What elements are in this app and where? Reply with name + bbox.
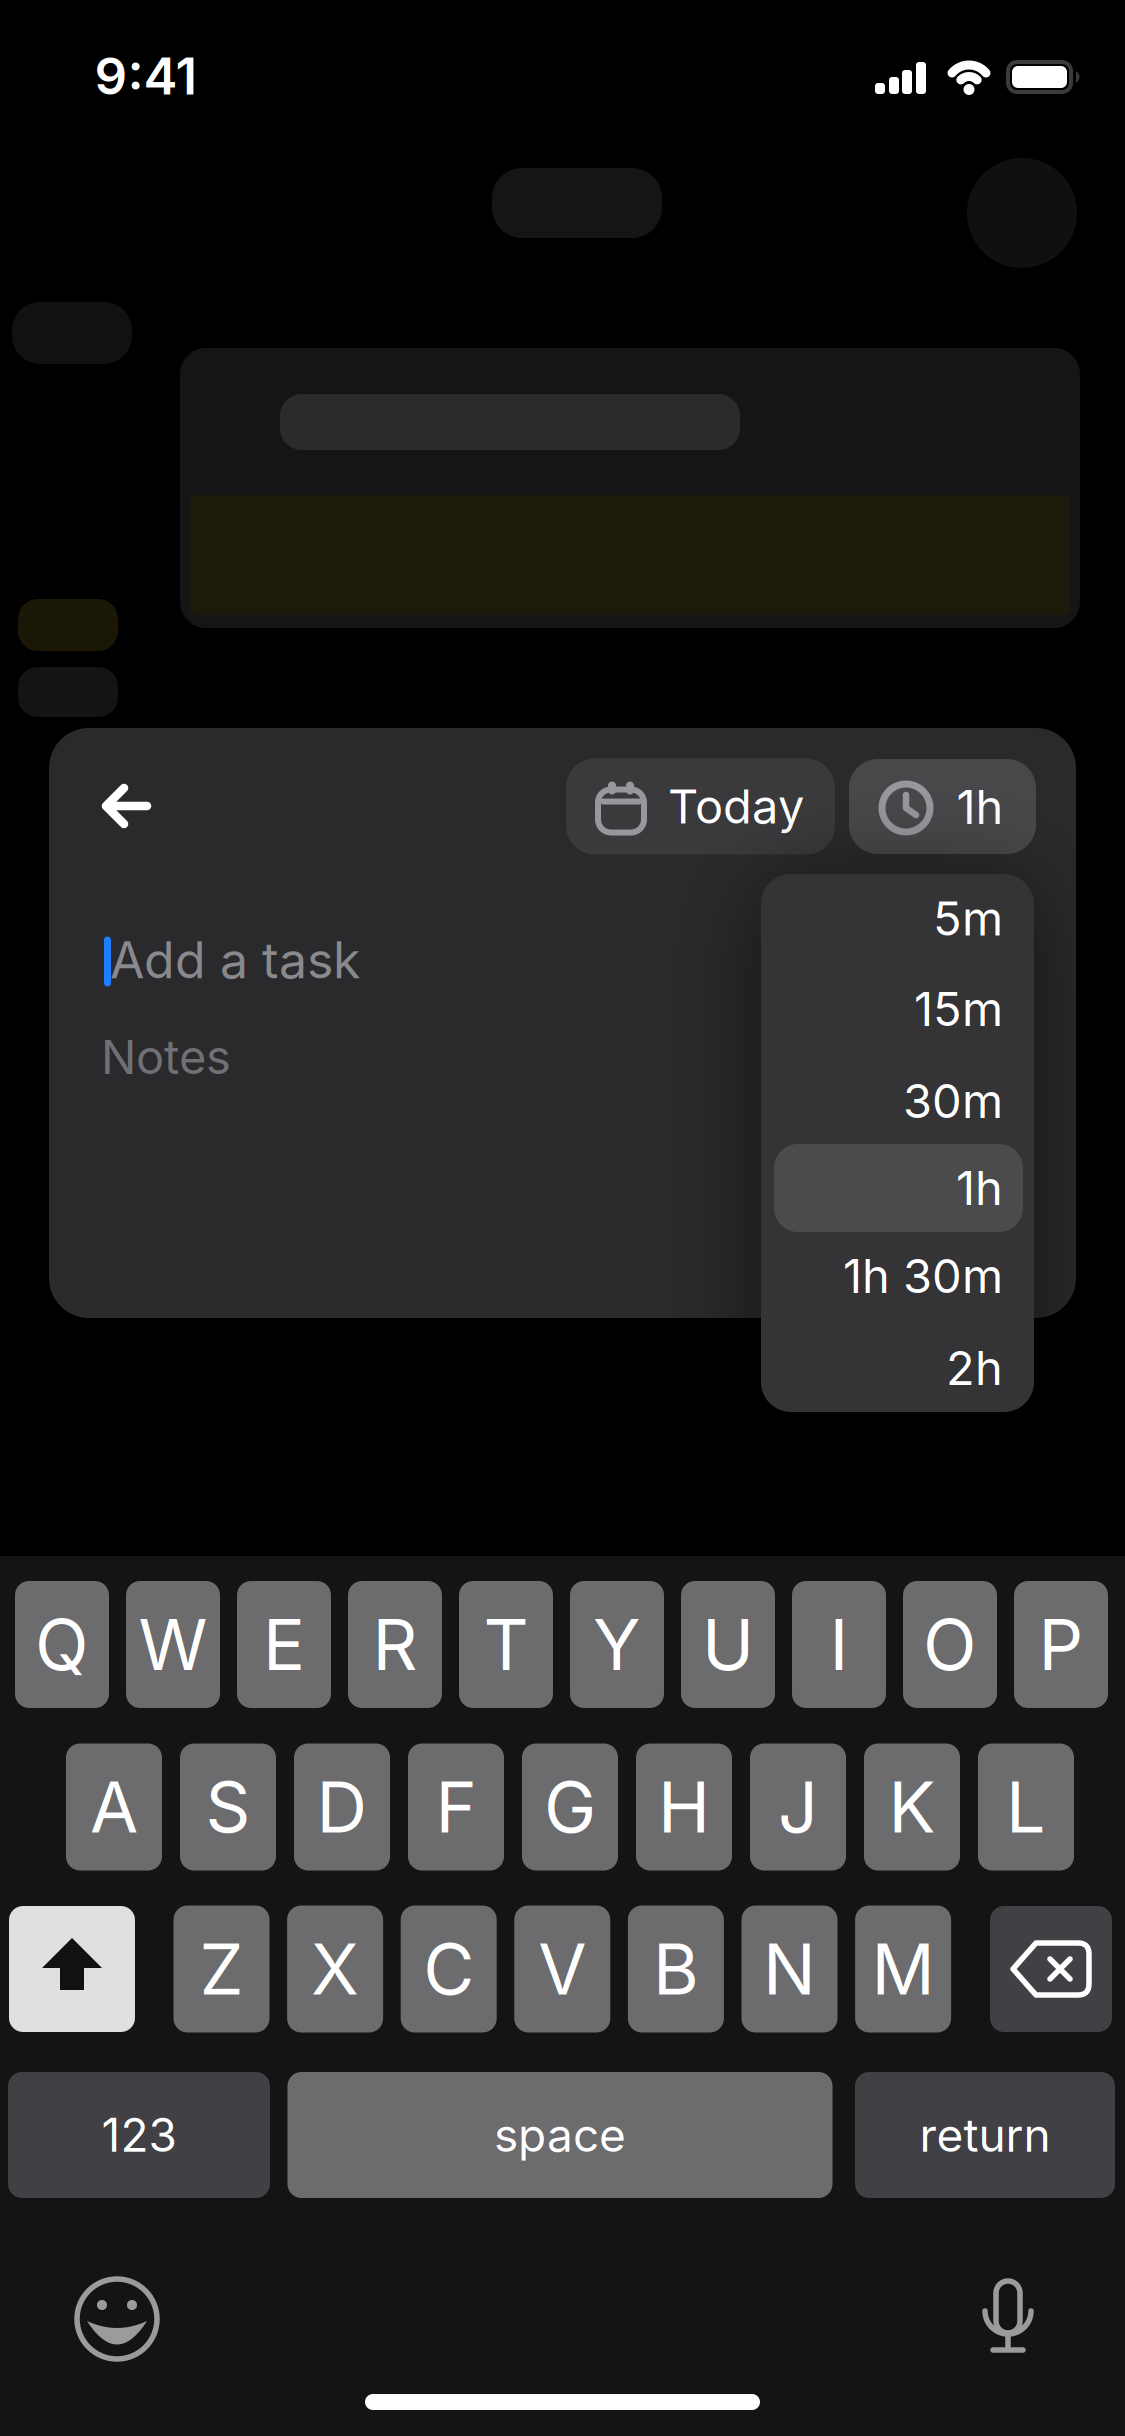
staticText: S	[205, 1765, 250, 1849]
staticText: 1h	[956, 1160, 1003, 1216]
button[interactable]: X	[287, 1905, 383, 2032]
button[interactable]: 123	[8, 2072, 270, 2198]
staticText: 15m	[914, 981, 1003, 1037]
staticText: G	[544, 1765, 596, 1849]
button[interactable]: 1h 30m	[761, 1232, 1003, 1320]
staticText: Y	[593, 1602, 641, 1687]
button[interactable]: 1h	[761, 1144, 1003, 1232]
staticText: 1h	[956, 779, 1003, 835]
staticText: E	[263, 1602, 305, 1687]
staticText: C	[423, 1927, 474, 2011]
button[interactable]: N	[741, 1905, 837, 2032]
button[interactable]: K	[864, 1743, 960, 1870]
button[interactable]: return	[855, 2072, 1115, 2198]
button[interactable]: 15m	[761, 965, 1003, 1053]
button[interactable]: space	[287, 2072, 832, 2198]
button[interactable]: Back	[87, 766, 167, 846]
button[interactable]: Today	[566, 758, 835, 854]
button[interactable]: G	[522, 1743, 618, 1870]
staticText: A	[90, 1765, 138, 1849]
staticText: return	[919, 2107, 1050, 2163]
button[interactable]: R	[348, 1581, 442, 1708]
button[interactable]: M	[855, 1905, 951, 2032]
staticText: K	[888, 1765, 935, 1849]
button[interactable]: Emoji	[69, 2271, 165, 2367]
staticText: 2h	[946, 1340, 1003, 1396]
staticText: U	[702, 1602, 754, 1687]
button[interactable]: J	[750, 1743, 846, 1870]
staticText: Add a task	[110, 930, 360, 990]
button[interactable]: Q	[15, 1581, 109, 1708]
staticText: Notes	[101, 1029, 231, 1085]
staticText: Z	[199, 1927, 243, 2011]
staticText: H	[658, 1765, 710, 1849]
staticText: Today	[668, 778, 804, 835]
staticText: N	[763, 1927, 816, 2011]
button[interactable]: Dictation	[968, 2270, 1048, 2366]
button[interactable]: 5m	[761, 874, 1003, 962]
button[interactable]: I	[792, 1581, 886, 1708]
staticText: M	[872, 1927, 935, 2011]
button[interactable]: W	[126, 1581, 220, 1708]
staticText: X	[311, 1927, 359, 2011]
button[interactable]: 30m	[761, 1057, 1003, 1145]
button[interactable]: C	[401, 1905, 497, 2032]
button[interactable]: 2h	[761, 1324, 1003, 1412]
button[interactable]: F	[408, 1743, 504, 1870]
staticText: I	[829, 1602, 848, 1687]
button[interactable]: P	[1014, 1581, 1108, 1708]
button[interactable]: Y	[570, 1581, 664, 1708]
staticText: 123	[101, 2107, 176, 2163]
staticText: R	[372, 1602, 417, 1687]
button[interactable]: V	[514, 1905, 610, 2032]
staticText: Q	[35, 1602, 89, 1687]
staticText: V	[538, 1927, 586, 2011]
staticText: 9:41	[94, 45, 197, 107]
button[interactable]: H	[636, 1743, 732, 1870]
button[interactable]: A	[66, 1743, 162, 1870]
staticText: 1h 30m	[843, 1248, 1003, 1304]
staticText: B	[653, 1927, 699, 2011]
button[interactable]: E	[237, 1581, 331, 1708]
button[interactable]: U	[681, 1581, 775, 1708]
staticText: J	[778, 1765, 818, 1849]
staticText: P	[1038, 1602, 1083, 1687]
button[interactable]: Z	[173, 1905, 269, 2032]
button[interactable]: 1h	[849, 759, 1036, 854]
button[interactable]: Delete	[990, 1906, 1112, 2032]
button[interactable]: S	[180, 1743, 276, 1870]
button[interactable]: L	[978, 1743, 1074, 1870]
button[interactable]: T	[459, 1581, 553, 1708]
button[interactable]: D	[294, 1743, 390, 1870]
staticText: L	[1006, 1765, 1046, 1849]
button[interactable]: B	[628, 1905, 724, 2032]
staticText: 5m	[933, 890, 1003, 947]
staticText: space	[494, 2107, 626, 2163]
button[interactable]: O	[903, 1581, 997, 1708]
staticText: D	[316, 1765, 367, 1849]
staticText: W	[138, 1602, 207, 1687]
staticText: 30m	[903, 1073, 1003, 1129]
staticText: O	[923, 1602, 977, 1687]
staticText: T	[483, 1602, 528, 1687]
staticText: F	[435, 1765, 476, 1849]
button[interactable]: Shift	[9, 1906, 135, 2032]
